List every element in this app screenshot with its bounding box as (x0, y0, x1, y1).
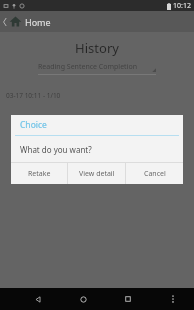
staticText: Cancel (144, 169, 166, 179)
button[interactable]: Reading Sentence Completion (38, 62, 156, 75)
staticText: Reading Sentence Completion (38, 62, 151, 72)
other: Home (9, 15, 22, 28)
button[interactable]: Recent apps (118, 289, 138, 309)
staticText: 03-17 10:11 - 1/10 (6, 91, 61, 100)
staticText: Home (25, 16, 51, 28)
staticText: What do you want? (20, 144, 92, 155)
staticText: Choice (20, 119, 47, 131)
button[interactable]: 03-17 10:11 - 1/10 (0, 86, 194, 104)
staticText: History (0, 39, 194, 57)
staticText: 10:12 (173, 1, 191, 11)
button[interactable]: Home (73, 289, 93, 309)
button[interactable]: Home (0, 11, 194, 32)
button[interactable]: Cancel (126, 163, 183, 184)
staticText: View detail (79, 169, 115, 179)
button[interactable]: Retake (11, 163, 67, 184)
button[interactable]: More options (163, 289, 183, 309)
button[interactable]: Back (28, 289, 48, 309)
button[interactable]: View detail (68, 163, 125, 184)
staticText: Retake (28, 169, 51, 179)
